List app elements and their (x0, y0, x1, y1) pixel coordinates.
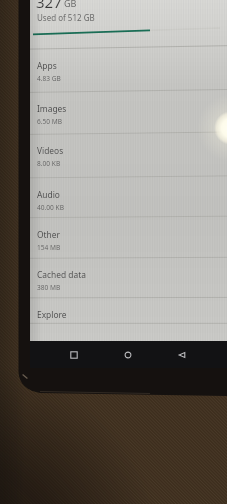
button[interactable]: Home (124, 351, 132, 359)
staticText: 8.00 KB (37, 159, 61, 168)
staticText: Explore (37, 309, 67, 320)
button[interactable]: Videos (30, 134, 227, 177)
staticText: 154 MB (37, 243, 61, 252)
staticText: Videos (37, 145, 64, 156)
button[interactable]: Images (30, 92, 227, 134)
button[interactable]: Apps (30, 49, 227, 93)
staticText: Other (37, 229, 60, 240)
staticText: 380 MB (37, 283, 61, 292)
staticText: 6.50 MB (37, 117, 63, 126)
button[interactable]: Other (30, 218, 227, 259)
button[interactable]: Audio (30, 178, 227, 218)
staticText: Images (37, 103, 67, 114)
staticText: Apps (37, 60, 57, 71)
staticText: GB (64, 0, 77, 9)
staticText: Cached data (37, 269, 86, 280)
button[interactable]: Cached data (30, 258, 227, 298)
staticText: Used of 512 GB (37, 12, 95, 23)
button[interactable]: Back (178, 351, 186, 359)
button[interactable]: Explore (30, 298, 227, 324)
staticText: 327 (36, 0, 62, 12)
button[interactable]: Recent apps (70, 351, 78, 359)
staticText: 4.83 GB (37, 74, 61, 83)
staticText: 40.00 KB (37, 203, 64, 212)
staticText: Audio (37, 189, 60, 200)
